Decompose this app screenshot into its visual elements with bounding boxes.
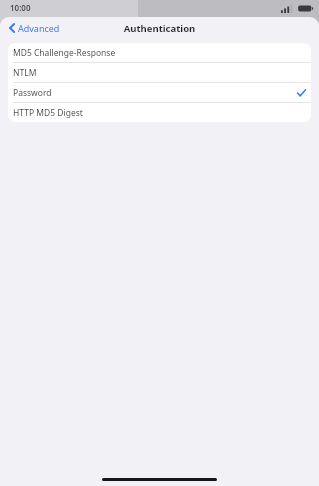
button[interactable]: NTLM — [8, 63, 311, 82]
button[interactable]: Advanced — [7, 19, 62, 37]
button[interactable]: Password — [8, 83, 311, 102]
other: Selected — [297, 89, 306, 97]
button[interactable]: HTTP MD5 Digest — [8, 103, 311, 122]
staticText: HTTP MD5 Digest — [13, 107, 83, 119]
staticText: 10:00 — [10, 2, 31, 13]
staticText: Authentication — [0, 22, 319, 35]
staticText: Advanced — [18, 22, 60, 34]
staticText: MD5 Challenge-Response — [13, 47, 116, 59]
staticText: NTLM — [13, 67, 37, 79]
staticText: Password — [13, 87, 52, 99]
button[interactable]: MD5 Challenge-Response — [8, 43, 311, 62]
